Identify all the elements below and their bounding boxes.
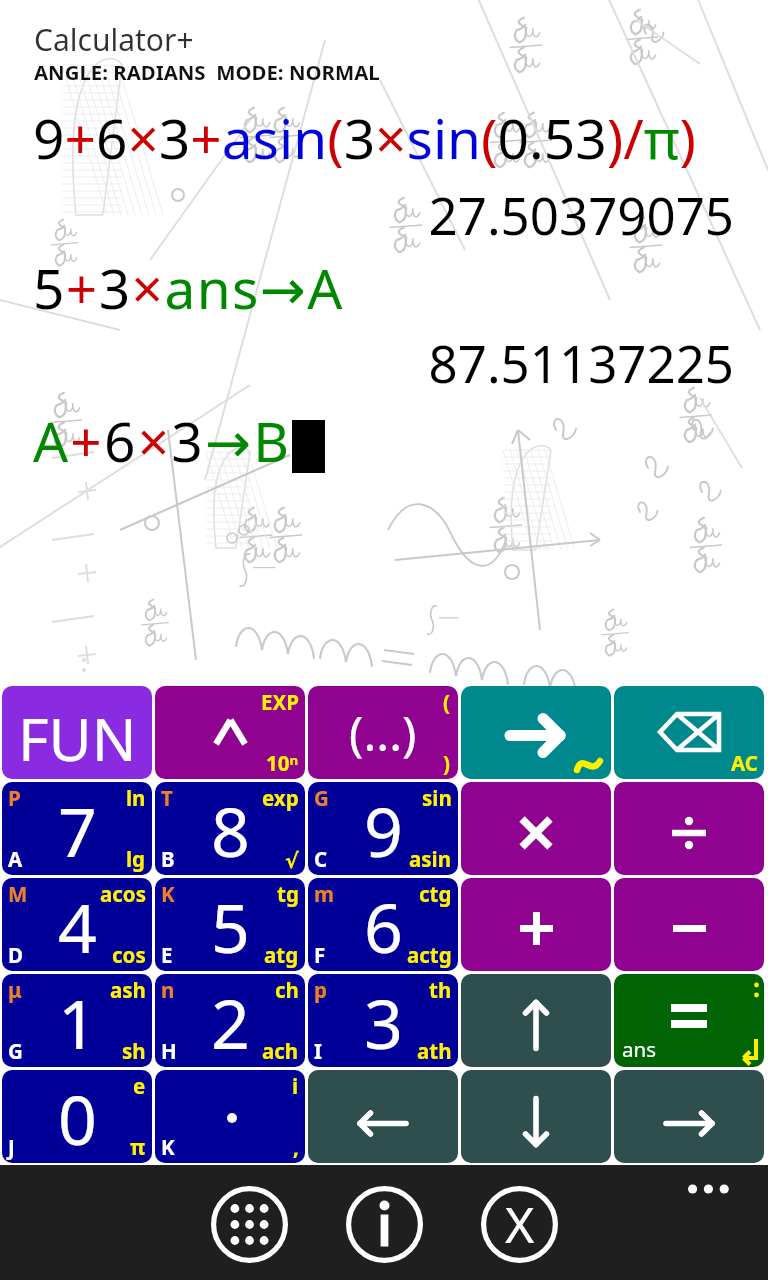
staticText: ) xyxy=(443,749,450,777)
button[interactable]: AC xyxy=(614,686,764,779)
staticText: μ xyxy=(8,976,22,1004)
staticText: asin xyxy=(409,845,452,873)
button[interactable]: Keypad xyxy=(207,1182,292,1267)
button[interactable]: 1 xyxy=(2,974,152,1067)
staticText: tg xyxy=(277,880,299,908)
staticText: 9 xyxy=(364,784,403,875)
staticText: T xyxy=(161,784,173,812)
button[interactable]: ans xyxy=(614,974,764,1067)
staticText: ctg xyxy=(419,880,452,908)
staticText: atg xyxy=(264,941,299,969)
staticText: 4 xyxy=(58,880,97,971)
staticText: B xyxy=(161,845,175,873)
staticText: 6 xyxy=(364,880,403,971)
staticText: 27.50379075 xyxy=(0,180,734,249)
staticText: e xyxy=(133,1072,146,1100)
button[interactable]: 9 xyxy=(308,782,458,875)
button[interactable]: 5 xyxy=(155,878,305,971)
button[interactable] xyxy=(614,1070,764,1163)
staticText: 5 xyxy=(211,880,250,971)
staticText: actg xyxy=(407,941,452,969)
staticText: M xyxy=(8,880,28,908)
staticText: th xyxy=(429,976,452,1004)
staticText: 0 xyxy=(58,1072,97,1163)
staticText: K xyxy=(161,1133,175,1161)
button[interactable]: 3 xyxy=(308,974,458,1067)
staticText: 10ⁿ xyxy=(266,749,299,777)
staticText: E xyxy=(161,941,173,969)
button[interactable] xyxy=(308,1070,458,1163)
staticText: ach xyxy=(262,1037,299,1065)
staticText: G xyxy=(8,1037,23,1065)
button[interactable]: EXP xyxy=(155,686,305,779)
button[interactable]: 0 xyxy=(2,1070,152,1163)
staticText: G xyxy=(314,784,329,812)
staticText: , xyxy=(293,1133,299,1161)
button[interactable]: 4 xyxy=(2,878,152,971)
staticText: √ xyxy=(285,849,299,873)
staticText: ln xyxy=(126,784,146,812)
staticText: 1 xyxy=(58,976,97,1067)
staticText: ch xyxy=(275,976,299,1004)
button[interactable] xyxy=(461,1070,611,1163)
staticText: J xyxy=(8,1133,15,1161)
button[interactable]: (...) xyxy=(308,686,458,779)
staticText: exp xyxy=(262,784,299,812)
staticText: i xyxy=(292,1072,299,1100)
button[interactable]: 7 xyxy=(2,782,152,875)
staticText: 7 xyxy=(58,784,97,875)
button[interactable] xyxy=(461,782,611,875)
staticText: P xyxy=(8,784,21,812)
staticText: A+6×3→B xyxy=(33,403,292,478)
staticText: A xyxy=(8,845,23,873)
staticText: 9+6×3+asin(3×sin(0.53)/π) xyxy=(33,100,697,175)
staticText: X xyxy=(505,1190,535,1258)
button[interactable]: Close xyxy=(477,1182,562,1267)
staticText: FUN xyxy=(18,698,137,778)
button[interactable]: 2 xyxy=(155,974,305,1067)
staticText: ath xyxy=(417,1037,452,1065)
staticText: (...) xyxy=(349,700,417,765)
button[interactable]: More options xyxy=(672,1169,744,1209)
staticText: ANGLE: RADIANS MODE: NORMAL xyxy=(34,58,380,86)
button[interactable]: Info xyxy=(342,1182,427,1267)
staticText: K xyxy=(161,880,175,908)
staticText: 8 xyxy=(211,784,250,875)
staticText: Calculator+ xyxy=(34,19,194,60)
button[interactable] xyxy=(461,974,611,1067)
staticText: H xyxy=(161,1037,177,1065)
staticText: acos xyxy=(100,880,146,908)
staticText: ans xyxy=(622,1035,656,1063)
staticText: 87.51137225 xyxy=(0,328,734,397)
staticText: F xyxy=(314,941,326,969)
button[interactable]: 8 xyxy=(155,782,305,875)
staticText: lg xyxy=(126,845,146,873)
button[interactable] xyxy=(614,878,764,971)
button[interactable]: i xyxy=(155,1070,305,1163)
staticText: I xyxy=(314,1037,322,1065)
button[interactable]: FUN xyxy=(2,686,152,779)
staticText: π xyxy=(130,1133,146,1161)
staticText: p xyxy=(314,976,327,1004)
button[interactable]: 6 xyxy=(308,878,458,971)
staticText: C xyxy=(314,845,328,873)
staticText: 3 xyxy=(364,976,403,1067)
button[interactable] xyxy=(614,782,764,875)
staticText: AC xyxy=(731,749,758,777)
staticText: sh xyxy=(122,1037,146,1065)
staticText: ash xyxy=(110,976,146,1004)
staticText: D xyxy=(8,941,24,969)
staticText: sin xyxy=(422,784,452,812)
button[interactable] xyxy=(461,878,611,971)
staticText: cos xyxy=(112,941,146,969)
staticText: m xyxy=(314,880,334,908)
staticText: 5+3×ans→A xyxy=(33,250,344,325)
staticText: 2 xyxy=(211,976,250,1067)
button[interactable] xyxy=(461,686,611,779)
staticText: EXP xyxy=(261,688,299,716)
staticText: n xyxy=(161,976,175,1004)
staticText: ( xyxy=(443,688,450,716)
